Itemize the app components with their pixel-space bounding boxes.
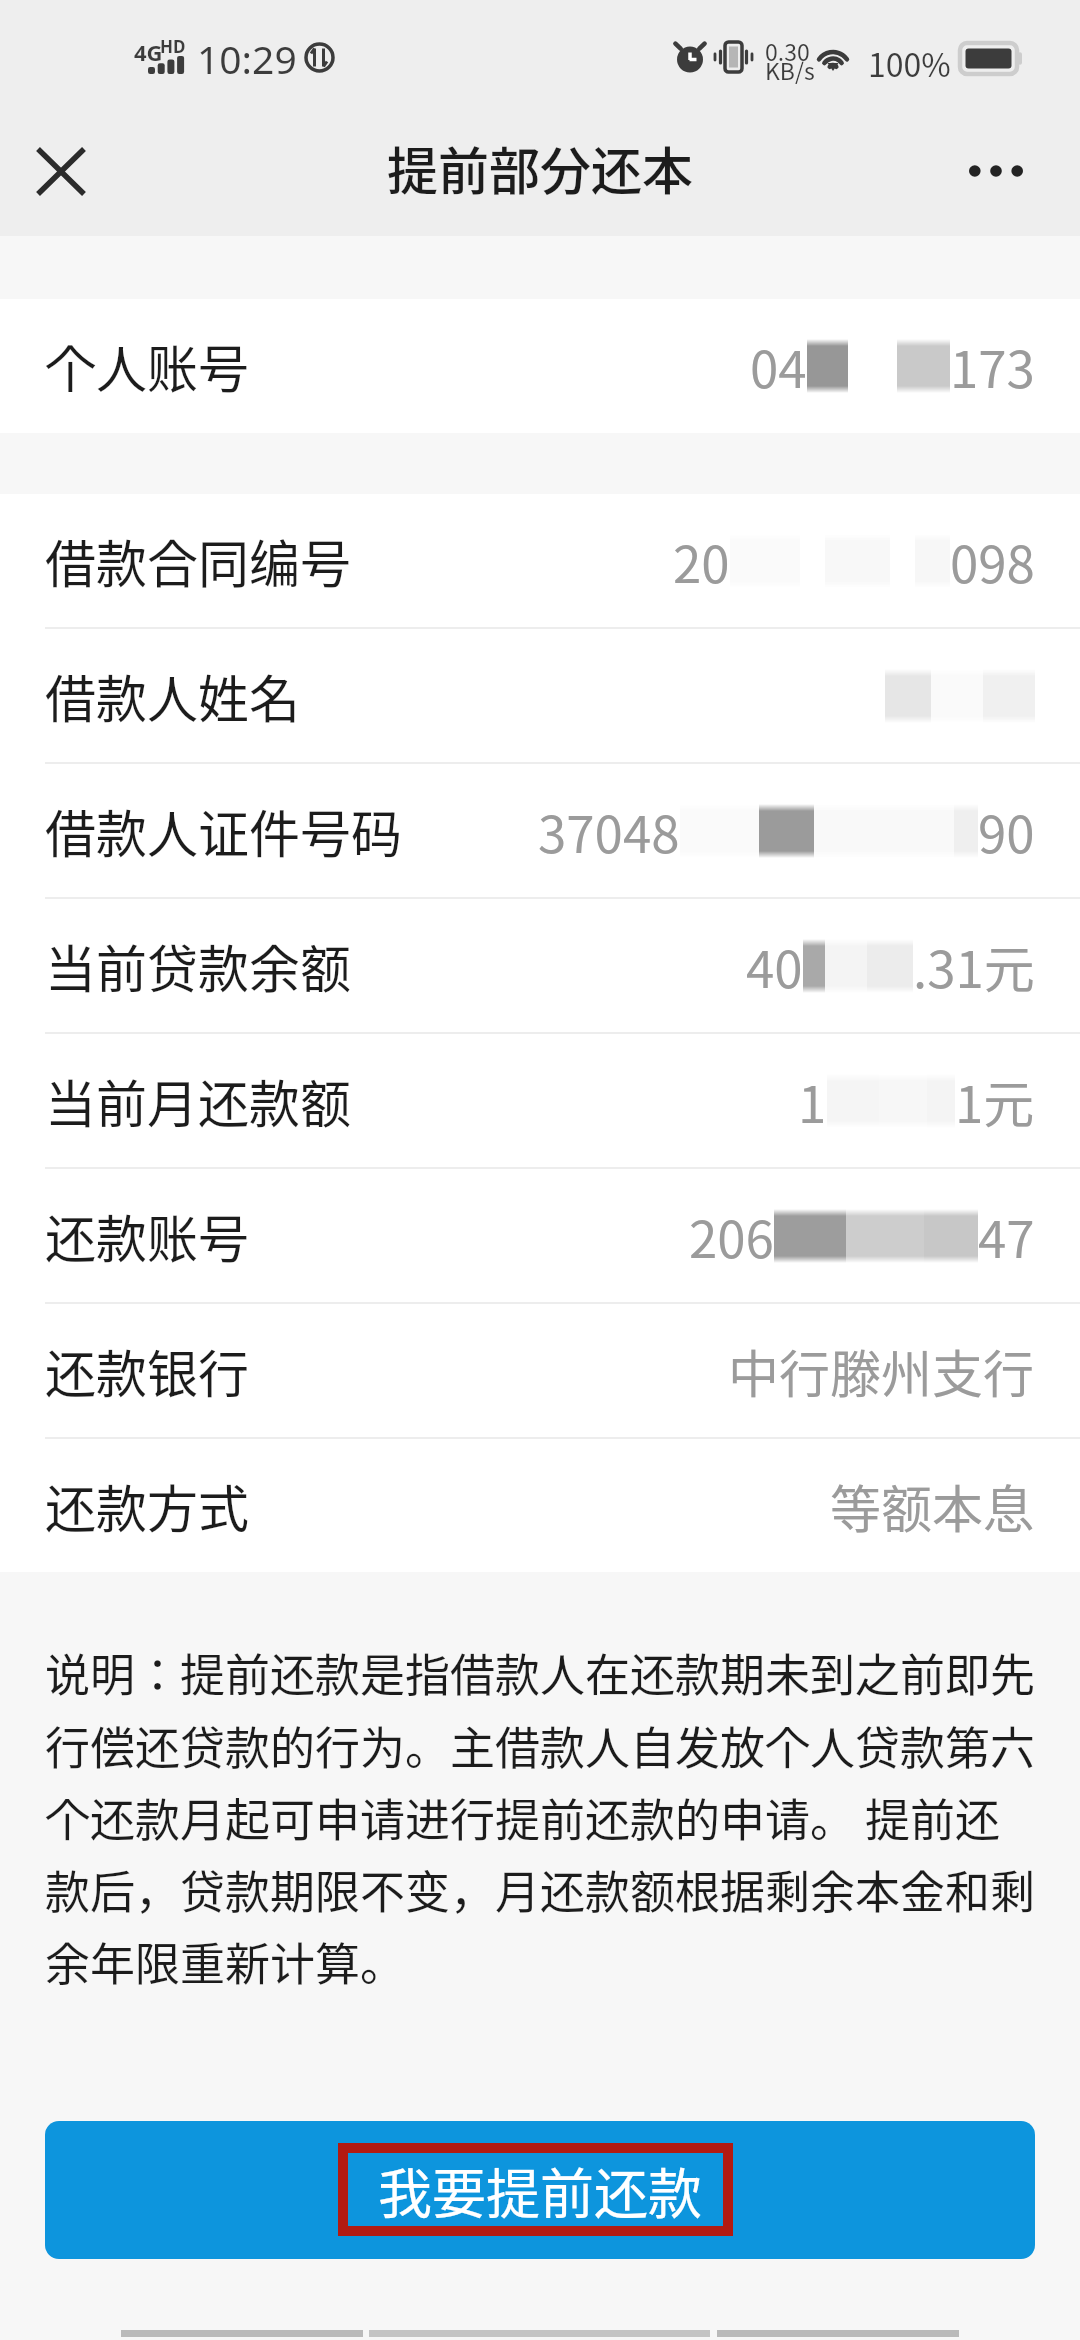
- staticText: 我要提前还款: [378, 2151, 702, 2229]
- staticText: 90: [978, 794, 1035, 868]
- staticText: 等额本息: [830, 1469, 1035, 1543]
- staticText: 0.30: [765, 34, 810, 67]
- button[interactable]: 还款银行: [0, 1304, 1080, 1437]
- staticText: 中行滕州支行: [728, 1334, 1035, 1408]
- button[interactable]: 个人账号: [0, 299, 1080, 433]
- staticText: 当前月还款额: [45, 1064, 352, 1138]
- button[interactable]: 借款人姓名: [0, 629, 1080, 762]
- staticText: 借款人证件号码: [45, 794, 403, 868]
- staticText: 借款合同编号: [45, 524, 352, 598]
- staticText: 1元: [955, 1064, 1035, 1138]
- button[interactable]: 借款人证件号码: [0, 764, 1080, 897]
- staticText: 173: [950, 329, 1035, 403]
- button[interactable]: 借款合同编号: [0, 494, 1080, 627]
- button[interactable]: 我要提前还款: [45, 2121, 1035, 2259]
- button[interactable]: 还款方式: [0, 1439, 1080, 1572]
- staticText: 40: [746, 929, 803, 1003]
- staticText: 借款人姓名: [45, 659, 301, 733]
- staticText: HD: [160, 35, 186, 58]
- button[interactable]: 当前贷款余额: [0, 899, 1080, 1032]
- staticText: .31元: [913, 929, 1035, 1003]
- staticText: 当前贷款余额: [45, 929, 352, 1003]
- staticText: 4G: [134, 37, 163, 67]
- staticText: 47: [978, 1199, 1035, 1273]
- staticText: 04: [750, 329, 807, 403]
- staticText: 20: [673, 524, 730, 598]
- staticText: 1: [798, 1064, 827, 1138]
- staticText: 还款账号: [45, 1199, 250, 1273]
- button[interactable]: 当前月还款额: [0, 1034, 1080, 1167]
- staticText: 还款银行: [45, 1334, 250, 1408]
- staticText: KB/s: [765, 53, 815, 86]
- button[interactable]: 还款账号: [0, 1169, 1080, 1302]
- staticText: 100%: [868, 40, 951, 86]
- button[interactable]: More options: [945, 121, 1047, 221]
- button[interactable]: Close: [20, 130, 102, 212]
- staticText: 37048: [538, 794, 680, 868]
- staticText: 098: [950, 524, 1035, 598]
- staticText: 个人账号: [45, 329, 250, 403]
- staticText: 提前部分还本: [387, 131, 694, 205]
- staticText: 10:29: [197, 32, 297, 85]
- staticText: 206: [689, 1199, 774, 1273]
- staticText: 说明：提前还款是指借款人在还款期未到之前即先行偿还贷款的行为。主借款人自发放个人…: [45, 1640, 1040, 1994]
- staticText: 还款方式: [45, 1469, 250, 1543]
